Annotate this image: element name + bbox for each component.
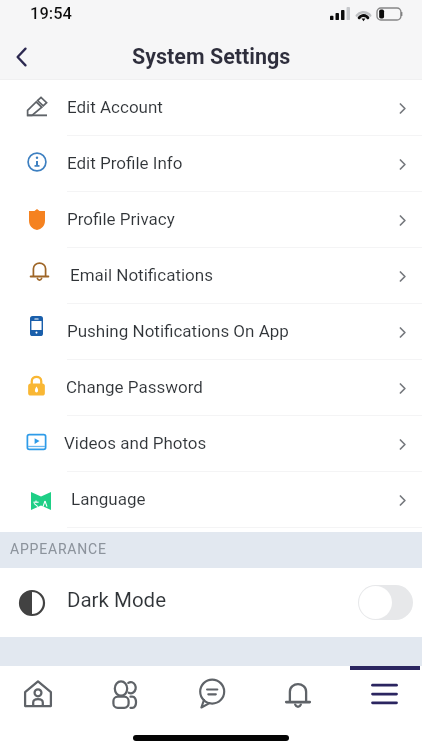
staticText: Change Password xyxy=(66,377,203,397)
staticText: Dark Mode xyxy=(67,588,167,612)
button[interactable]: Home xyxy=(10,666,66,722)
button[interactable]: Dark Mode xyxy=(0,568,422,637)
button[interactable]: Dark Mode toggle xyxy=(358,585,413,620)
button[interactable]: Pushing Notifications On App xyxy=(0,304,422,360)
button[interactable]: Messages xyxy=(183,666,239,722)
staticText: APPEARANCE xyxy=(10,541,107,557)
staticText: Pushing Notifications On App xyxy=(67,321,289,341)
button[interactable]: Edit Profile Info xyxy=(0,136,422,192)
staticText: Edit Profile Info xyxy=(67,153,183,173)
staticText: 19:54 xyxy=(30,4,72,23)
button[interactable]: Profile Privacy xyxy=(0,192,422,248)
button[interactable]: Menu xyxy=(356,666,412,722)
button[interactable]: Edit Account xyxy=(0,80,422,136)
button[interactable]: Email Notifications xyxy=(0,248,422,304)
button[interactable]: Notifications xyxy=(270,666,326,722)
button[interactable]: Change Password xyxy=(0,360,422,416)
button[interactable]: Videos and Photos xyxy=(0,416,422,472)
staticText: Profile Privacy xyxy=(67,209,175,229)
button[interactable]: Language xyxy=(0,472,422,528)
staticText: Language xyxy=(71,489,146,509)
button[interactable]: Back xyxy=(0,38,44,79)
staticText: Videos and Photos xyxy=(64,433,207,453)
button[interactable]: People xyxy=(97,666,153,722)
staticText: Edit Account xyxy=(67,97,163,117)
staticText: Email Notifications xyxy=(70,265,213,285)
staticText: System Settings xyxy=(132,44,291,69)
